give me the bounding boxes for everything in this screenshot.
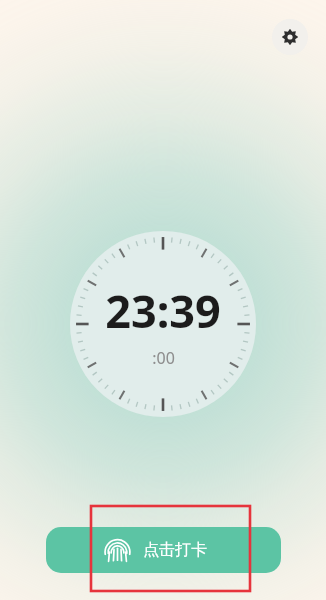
- button[interactable]: Settings: [272, 19, 308, 55]
- button[interactable]: 点击打卡: [46, 527, 281, 573]
- staticText: :00: [152, 347, 175, 369]
- staticText: 23:39: [105, 280, 221, 341]
- staticText: 点击打卡: [143, 540, 207, 560]
